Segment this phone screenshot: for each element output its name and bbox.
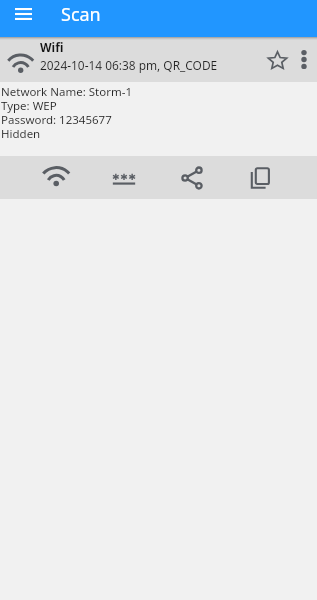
staticText: 2024-10-14 06:38 pm, QR_CODE bbox=[40, 57, 218, 73]
button[interactable]: Connect to this network bbox=[22, 156, 90, 199]
button[interactable]: Favorite bbox=[261, 42, 294, 77]
staticText: Network Name: Storm-1 Type: WEP Password… bbox=[1, 84, 132, 141]
staticText: Scan bbox=[61, 2, 101, 27]
button[interactable]: More options bbox=[292, 42, 315, 77]
button[interactable]: Open navigation menu bbox=[8, 0, 38, 28]
staticText: Wifi bbox=[40, 39, 64, 55]
button[interactable]: Share bbox=[158, 156, 226, 199]
button[interactable]: Wifi bbox=[0, 37, 317, 82]
button[interactable]: Show password bbox=[90, 156, 158, 199]
button[interactable]: Copy bbox=[226, 156, 294, 199]
